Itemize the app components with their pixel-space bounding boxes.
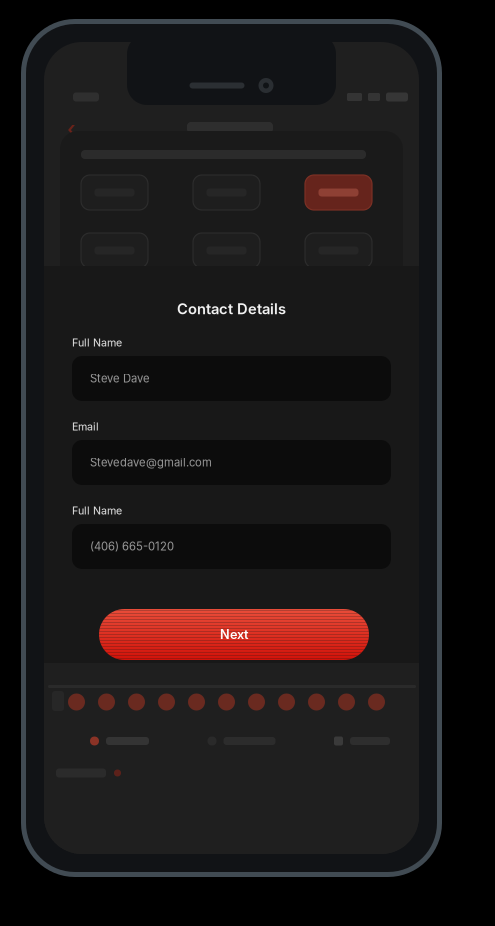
button[interactable]: Seat (338, 693, 355, 710)
button[interactable]: Next (99, 609, 369, 660)
staticText: Full Name (72, 336, 122, 349)
button[interactable]: Seat (98, 693, 115, 710)
staticText: ‹ (67, 113, 77, 145)
button[interactable] (81, 175, 148, 210)
button[interactable]: Seat (68, 693, 85, 710)
button[interactable]: Seat (278, 693, 295, 710)
button[interactable]: (406) 665-0120 (72, 524, 391, 569)
button[interactable]: Stevedave@gmail.com (72, 440, 391, 485)
button[interactable]: Seat (308, 693, 325, 710)
staticText: Steve Dave (90, 372, 150, 385)
button[interactable]: Seat (248, 693, 265, 710)
button[interactable] (193, 233, 260, 268)
button[interactable]: Seat (158, 693, 175, 710)
button[interactable]: Seat (218, 693, 235, 710)
button[interactable]: Seat (188, 693, 205, 710)
button[interactable] (81, 233, 148, 268)
staticText: Email (72, 420, 99, 433)
button[interactable]: Steve Dave (72, 356, 391, 401)
button[interactable] (305, 175, 372, 210)
button[interactable]: Seat (368, 693, 385, 710)
staticText: Contact Details (177, 300, 286, 318)
button[interactable] (193, 175, 260, 210)
button[interactable]: Back (58, 118, 86, 140)
button[interactable]: Seat (128, 693, 145, 710)
staticText: Next (220, 627, 248, 642)
staticText: (406) 665-0120 (90, 540, 174, 553)
staticText: Full Name (72, 504, 122, 517)
button[interactable] (305, 233, 372, 268)
staticText: Stevedave@gmail.com (90, 456, 212, 469)
